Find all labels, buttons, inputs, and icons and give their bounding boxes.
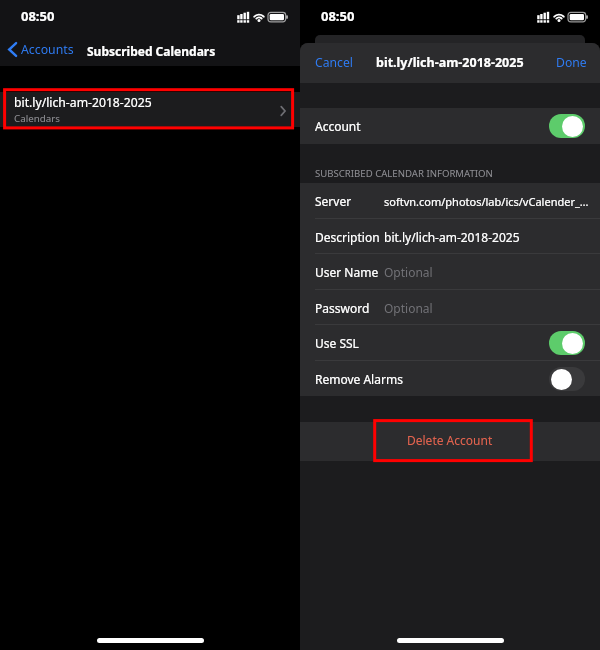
staticText: Subscribed Calendars [87, 43, 216, 59]
staticText: SUBSCRIBED CALENDAR INFORMATION [315, 167, 493, 180]
staticText: Account [315, 118, 361, 134]
button[interactable]: Remove Alarms [300, 361, 600, 396]
staticText: softvn.com/photos/lab/ics/vCalender_201… [384, 194, 590, 209]
staticText: 08:50 [321, 7, 355, 25]
staticText: 08:50 [21, 7, 55, 25]
button[interactable]: bit.ly/lich-am-2018-2025 [0, 92, 300, 127]
button[interactable]: Account [300, 108, 600, 144]
button[interactable]: Password [300, 290, 600, 325]
button[interactable]: On [549, 331, 585, 355]
staticText: bit.ly/lich-am-2018-2025 [376, 54, 524, 71]
staticText: bit.ly/lich-am-2018-2025 [384, 229, 520, 245]
button[interactable]: Delete Account [300, 422, 600, 461]
staticText: Server [315, 193, 352, 209]
staticText: Remove Alarms [315, 371, 403, 387]
button[interactable]: On [549, 114, 585, 138]
staticText: Optional [384, 264, 433, 280]
button[interactable]: Cancel [300, 45, 353, 80]
button[interactable]: Back to Accounts [0, 36, 80, 62]
staticText: Optional [384, 300, 433, 316]
staticText: bit.ly/lich-am-2018-2025 [14, 94, 152, 111]
button[interactable]: Description [300, 219, 600, 254]
staticText: Password [315, 300, 370, 316]
button[interactable]: Done [556, 45, 600, 80]
staticText: Use SSL [315, 335, 359, 351]
staticText: User Name [315, 264, 379, 280]
button[interactable]: User Name [300, 254, 600, 290]
staticText: Calendars [14, 112, 61, 125]
button[interactable]: Server [300, 183, 600, 219]
button[interactable]: Use SSL [300, 325, 600, 361]
staticText: Delete Account [407, 432, 493, 448]
staticText: Accounts [21, 41, 74, 58]
staticText: Description [315, 229, 380, 245]
button[interactable]: Off [549, 367, 585, 391]
